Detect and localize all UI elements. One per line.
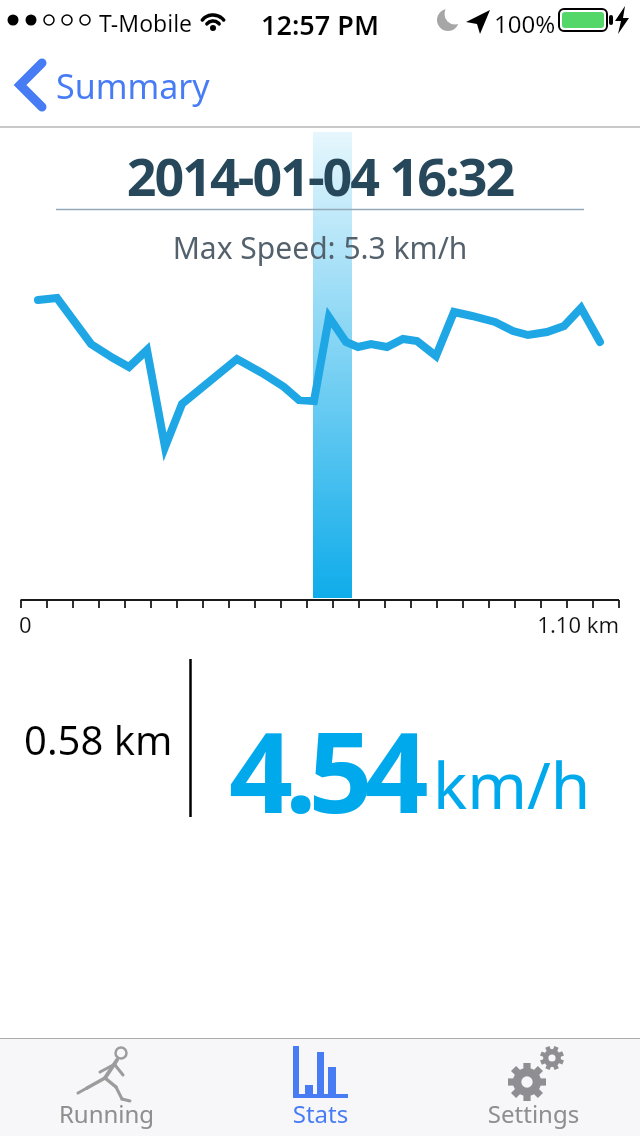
button[interactable]: Settings	[427, 1039, 640, 1130]
staticText: T-Mobile	[99, 7, 193, 38]
staticText: Max Speed: 5.3 km/h	[0, 227, 640, 268]
staticText: 4.54	[229, 693, 421, 846]
staticText: km/h	[433, 741, 591, 828]
button[interactable]: Running	[0, 1039, 213, 1130]
staticText: 1.10 km	[419, 609, 619, 639]
staticText: Running	[0, 1097, 213, 1130]
button[interactable]: Summary	[0, 52, 210, 118]
staticText: Settings	[427, 1097, 640, 1130]
staticText: 2014-01-04 16:32	[0, 140, 640, 211]
staticText: 0	[19, 609, 32, 639]
staticText: Summary	[56, 63, 210, 109]
staticText: 12:57 PM	[0, 6, 640, 43]
button[interactable]: Stats	[214, 1039, 427, 1130]
staticText: Stats	[214, 1097, 427, 1130]
staticText: 0.58 km	[24, 712, 173, 766]
staticText: 100%	[494, 7, 556, 40]
